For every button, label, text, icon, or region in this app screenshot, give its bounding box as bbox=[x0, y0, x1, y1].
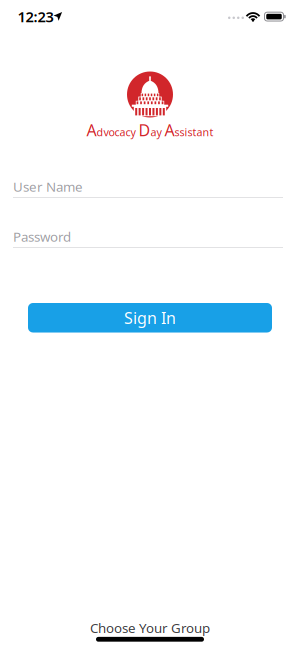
staticText: User Name bbox=[13, 178, 83, 195]
staticText: Choose Your Group bbox=[90, 619, 210, 637]
staticText: Sign In bbox=[124, 307, 176, 328]
staticText: Advocacy Day Assistant bbox=[86, 119, 213, 141]
button[interactable]: Sign In bbox=[28, 303, 272, 332]
button[interactable]: Choose Your Group bbox=[90, 619, 210, 637]
staticText: 12:23 bbox=[17, 7, 53, 26]
staticText: Password bbox=[13, 228, 71, 245]
button[interactable]: Password bbox=[13, 228, 283, 248]
button[interactable]: User Name bbox=[13, 178, 283, 198]
